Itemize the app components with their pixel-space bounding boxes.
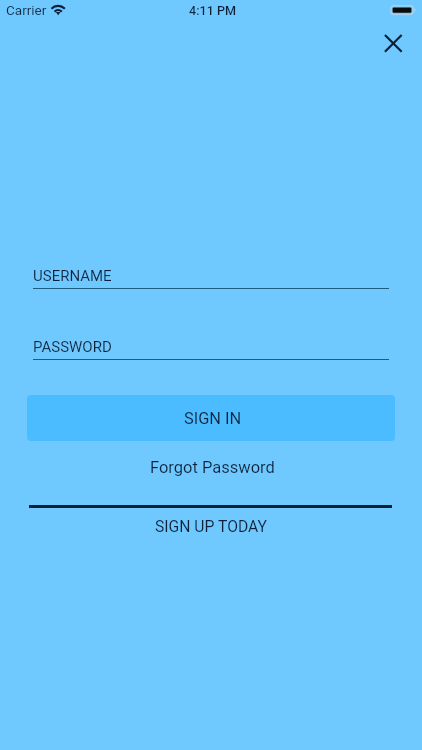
staticText: SIGN UP TODAY xyxy=(155,517,268,535)
button[interactable]: SIGN UP TODAY xyxy=(0,513,422,539)
button[interactable]: USERNAME xyxy=(33,263,389,289)
staticText: PASSWORD xyxy=(33,338,112,356)
staticText: Forgot Password xyxy=(150,458,275,477)
button[interactable]: Forgot Password xyxy=(0,451,422,483)
staticText: Carrier xyxy=(6,2,47,18)
button[interactable]: Close xyxy=(370,20,415,65)
staticText: USERNAME xyxy=(33,267,112,285)
button[interactable]: SIGN IN xyxy=(27,395,395,441)
staticText: 4:11 PM xyxy=(189,3,237,18)
staticText: SIGN IN xyxy=(184,409,242,428)
button[interactable]: PASSWORD xyxy=(33,334,389,360)
